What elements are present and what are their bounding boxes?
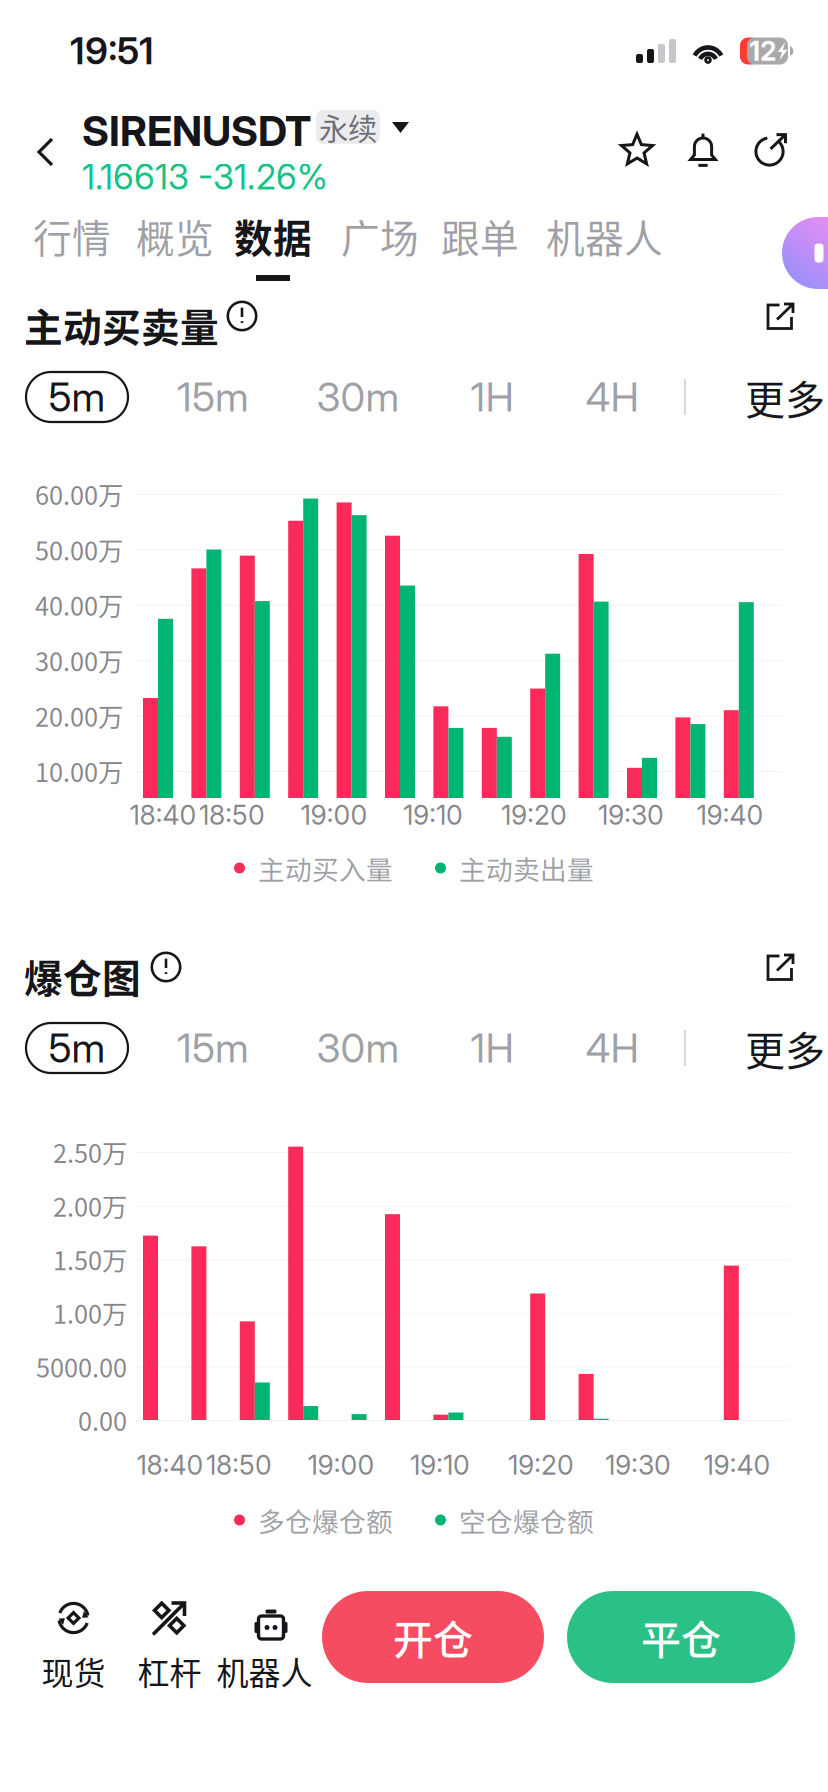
staticText: 50.00万	[35, 531, 123, 568]
button[interactable]: 15m	[168, 372, 258, 422]
staticText: 30m	[316, 1024, 399, 1072]
button[interactable]: 4H	[577, 1023, 647, 1073]
staticText: 0.00	[78, 1402, 127, 1438]
staticText: 19:30	[598, 799, 664, 831]
staticText: 18:40	[136, 1449, 203, 1481]
button[interactable]: Share	[742, 121, 800, 178]
button[interactable]: 现货	[23, 1599, 123, 1694]
staticText: 19:30	[605, 1449, 671, 1481]
staticText: 主动卖出量	[459, 849, 594, 887]
button[interactable]: 5m	[26, 372, 128, 422]
staticText: 多仓爆仓额	[258, 1501, 393, 1539]
button[interactable]: Back	[16, 116, 76, 188]
staticText: 10.00万	[35, 753, 123, 789]
staticText: 19:10	[403, 799, 463, 831]
button[interactable]: AI assistant	[782, 217, 828, 289]
staticText: 机器人	[216, 1648, 312, 1694]
button[interactable]: 概览	[132, 214, 218, 264]
staticText: 跟单	[441, 208, 519, 264]
button[interactable]: Add to favourites	[608, 122, 666, 179]
staticText: 平仓	[641, 1608, 721, 1666]
staticText: 主动买卖量	[24, 297, 219, 353]
staticText: 1.00万	[53, 1294, 127, 1331]
staticText: 18:50	[199, 799, 265, 831]
staticText: 19:10	[410, 1449, 470, 1481]
staticText: 杠杆	[137, 1648, 201, 1694]
staticText: 19:20	[508, 1449, 574, 1481]
button[interactable]: 跟单	[437, 214, 523, 264]
staticText: 1H	[470, 373, 513, 421]
staticText: 19:40	[696, 799, 763, 831]
staticText: 30m	[316, 373, 399, 421]
staticText: 19:40	[703, 1449, 770, 1481]
button[interactable]: 杠杆	[119, 1599, 219, 1694]
staticText: SIRENUSDT	[82, 106, 311, 156]
staticText: 主动买入量	[258, 849, 393, 887]
staticText: 行情	[33, 208, 111, 264]
staticText: 爆仓图	[24, 948, 141, 1004]
staticText: 机器人	[546, 208, 663, 264]
button[interactable]: 更多	[745, 1023, 828, 1073]
staticText: 15m	[177, 373, 249, 421]
button[interactable]: 5m	[26, 1023, 128, 1073]
staticText: 永续	[319, 106, 377, 148]
staticText: 18:50	[206, 1449, 272, 1481]
button[interactable]: 1H	[457, 372, 527, 422]
staticText: 5m	[48, 1024, 105, 1072]
button[interactable]: Price alert	[677, 120, 730, 180]
staticText: 更多	[745, 1019, 825, 1077]
staticText: 2.50万	[53, 1134, 127, 1170]
button[interactable]: 15m	[168, 1023, 258, 1073]
staticText: 30.00万	[35, 642, 123, 679]
button[interactable]: Open full screen	[764, 300, 796, 332]
staticText: 5000.00	[36, 1348, 127, 1385]
staticText: 数据	[234, 208, 312, 264]
staticText: 开仓	[393, 1608, 473, 1666]
staticText: 1H	[470, 1024, 513, 1072]
button[interactable]: 机器人	[214, 1599, 314, 1694]
staticText: 60.00万	[35, 476, 123, 512]
button[interactable]: 广场	[337, 214, 423, 264]
button[interactable]: 更多	[745, 372, 828, 422]
button[interactable]: 机器人	[542, 214, 667, 264]
staticText: 广场	[341, 208, 419, 264]
button[interactable]: 30m	[313, 372, 403, 422]
button[interactable]: 数据	[230, 214, 316, 264]
staticText: 概览	[136, 208, 214, 264]
staticText: 19:00	[307, 1449, 374, 1481]
staticText: 1.16613 -31.26%	[82, 156, 328, 198]
staticText: 现货	[41, 1648, 105, 1694]
staticText: 19:00	[300, 799, 367, 831]
staticText: 4H	[585, 373, 638, 421]
staticText: 19:51	[70, 28, 154, 73]
staticText: 18:40	[129, 799, 196, 831]
button[interactable]: 4H	[577, 372, 647, 422]
button[interactable]: Open full screen	[764, 951, 796, 983]
button[interactable]: 开仓	[322, 1591, 544, 1683]
staticText: 5m	[48, 373, 105, 421]
button[interactable]: 30m	[313, 1023, 403, 1073]
staticText: 空仓爆仓额	[459, 1501, 594, 1539]
staticText: 19:20	[501, 799, 567, 831]
staticText: 20.00万	[35, 697, 123, 734]
staticText: 12	[749, 35, 777, 67]
button[interactable]: 行情	[29, 214, 115, 264]
staticText: 40.00万	[35, 586, 123, 623]
staticText: 更多	[745, 368, 825, 426]
staticText: 4H	[585, 1024, 638, 1072]
staticText: 2.00万	[53, 1187, 127, 1224]
button[interactable]: 平仓	[567, 1591, 795, 1683]
staticText: 1.50万	[53, 1241, 127, 1278]
staticText: 15m	[177, 1024, 249, 1072]
button[interactable]: 1H	[457, 1023, 527, 1073]
